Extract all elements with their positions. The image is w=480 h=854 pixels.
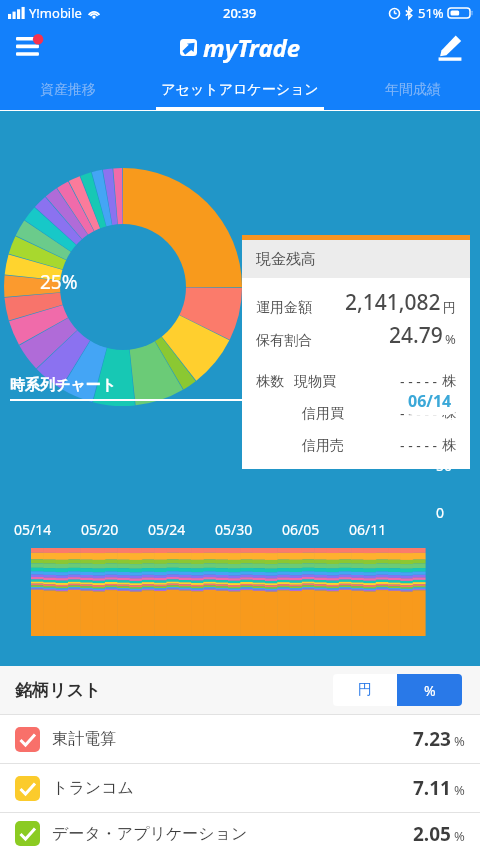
staticText: 50 (436, 456, 453, 475)
staticText: 株 (442, 437, 456, 455)
staticText: 51% (418, 4, 444, 22)
button[interactable]: % (397, 674, 462, 706)
staticText: % (454, 827, 465, 845)
staticText: 100 (432, 413, 457, 432)
staticText: 2,141,082 (345, 288, 441, 317)
staticText: 信用売 (302, 437, 344, 455)
staticText: 株数 (256, 373, 284, 391)
staticText: % (424, 681, 436, 700)
staticText: 株 (442, 373, 456, 391)
staticText: 05/24 (148, 520, 215, 539)
staticText: 0 (436, 503, 445, 522)
staticText: - - - - - (400, 372, 438, 391)
staticText: 現金残高 (256, 250, 316, 269)
staticText: 資産推移 (40, 81, 96, 99)
button[interactable]: トランコム (0, 764, 480, 812)
staticText: アセットアロケーション (161, 81, 319, 99)
button[interactable]: Menu (10, 27, 50, 67)
staticText: データ・アプリケーション (52, 824, 248, 844)
staticText: トランコム (52, 778, 134, 798)
staticText: % (454, 781, 465, 799)
staticText: 現物買 (294, 373, 336, 391)
staticText: 05/14 (14, 520, 81, 539)
staticText: 7.23 (413, 726, 451, 752)
staticText: 06/05 (282, 520, 349, 539)
staticText: 2.05 (413, 821, 451, 847)
staticText: 05/20 (81, 520, 148, 539)
staticText: 24.79 (389, 321, 443, 350)
staticText: - - - - - (400, 404, 438, 423)
button[interactable]: 円 (333, 674, 397, 706)
staticText: myTrade (203, 31, 301, 64)
staticText: 25% (40, 269, 78, 295)
staticText: 株 (442, 405, 456, 423)
staticText: 06/14 (408, 390, 452, 412)
staticText: 円 (443, 299, 456, 315)
staticText: 7.11 (413, 775, 451, 801)
button[interactable]: 東計電算 (0, 715, 480, 763)
staticText: 円 (358, 681, 372, 699)
staticText: - - - - - (400, 436, 438, 455)
staticText: 年間成績 (385, 81, 441, 99)
staticText: % (445, 330, 456, 348)
staticText: 時系列チャート (10, 376, 117, 395)
staticText: 東計電算 (52, 729, 116, 749)
staticText: 銘柄リスト (15, 680, 102, 701)
staticText: 20:39 (223, 4, 257, 22)
staticText: 保有割合 (256, 332, 312, 350)
button[interactable]: 資産推移 (0, 69, 135, 110)
button[interactable]: データ・アプリケーション (0, 813, 480, 854)
staticText: 05/30 (215, 520, 282, 539)
staticText: 信用買 (302, 405, 344, 423)
staticText: Y!mobile (29, 4, 82, 22)
button[interactable]: アセットアロケーション (135, 69, 345, 110)
staticText: 運用金額 (256, 299, 312, 317)
staticText: % (454, 732, 465, 750)
staticText: 06/11 (349, 520, 416, 539)
button[interactable]: 年間成績 (345, 69, 480, 110)
button[interactable]: Edit (430, 27, 470, 67)
